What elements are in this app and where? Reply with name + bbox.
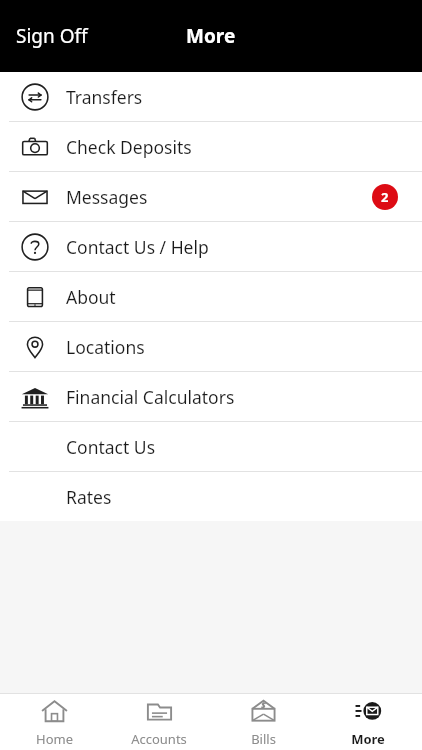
button[interactable]: Home — [4, 694, 104, 750]
button[interactable]: Transfers — [0, 72, 422, 121]
other: Bills — [250, 698, 277, 725]
other: Accounts — [146, 698, 173, 725]
button[interactable]: Rates — [0, 472, 422, 521]
staticText: Messages — [66, 185, 148, 209]
staticText: Financial Calculators — [66, 385, 235, 409]
staticText: About — [66, 285, 116, 309]
button[interactable]: Bills — [213, 694, 313, 750]
staticText: Rates — [66, 485, 112, 509]
button[interactable]: Contact Us — [0, 422, 422, 471]
button[interactable]: Locations — [0, 322, 422, 371]
button[interactable]: Check Deposits — [0, 122, 422, 171]
button[interactable]: Sign Off — [6, 15, 98, 57]
staticText: Locations — [66, 335, 145, 359]
button[interactable]: Contact Us / Help — [0, 222, 422, 271]
staticText: Bills — [251, 730, 276, 746]
other: Home — [41, 698, 68, 725]
button[interactable]: More — [318, 694, 418, 750]
staticText: Contact Us — [66, 435, 156, 459]
staticText: Check Deposits — [66, 135, 192, 159]
button[interactable]: Financial Calculators — [0, 372, 422, 421]
staticText: Sign Off — [16, 23, 88, 49]
button[interactable]: Messages — [0, 172, 422, 221]
button[interactable]: Accounts — [109, 694, 209, 750]
staticText: Home — [36, 730, 73, 746]
other: More — [355, 698, 382, 725]
staticText: Transfers — [66, 85, 143, 109]
button[interactable]: About — [0, 272, 422, 321]
staticText: Accounts — [131, 730, 187, 746]
staticText: More — [351, 730, 385, 746]
staticText: More — [186, 23, 236, 49]
staticText: Contact Us / Help — [66, 235, 209, 259]
staticText: 2 — [381, 188, 389, 206]
